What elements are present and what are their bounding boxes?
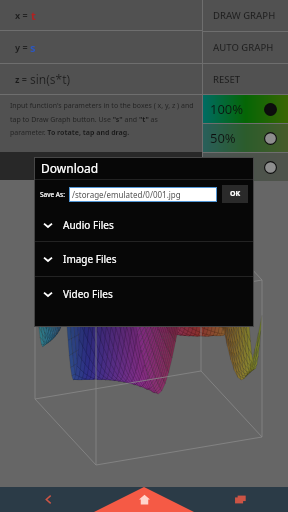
button[interactable]: Recents (192, 487, 288, 512)
staticText: sin(s*t) (30, 71, 71, 87)
staticText: RESET (213, 73, 241, 86)
button[interactable]: x = (0, 0, 202, 30)
button[interactable]: RESET (203, 64, 288, 94)
staticText: Audio Files (63, 218, 114, 232)
staticText: 50% (210, 129, 236, 147)
staticText: AUTO GRAPH (213, 41, 274, 54)
staticText: x = (15, 9, 31, 21)
button[interactable]: AUTO GRAPH (203, 32, 288, 63)
staticText: Save As: (40, 190, 65, 199)
button[interactable]: 100% (203, 95, 288, 123)
staticText: y = (15, 41, 30, 53)
staticText: Download (41, 160, 99, 176)
staticText: DRAW GRAPH (213, 9, 276, 22)
button[interactable]: DRAW GRAPH (203, 0, 288, 31)
button[interactable]: y = (0, 31, 202, 63)
button[interactable]: OK (222, 185, 248, 203)
button[interactable]: Audio Files (34, 208, 254, 241)
staticText: t (31, 8, 36, 23)
button[interactable]: 0% (203, 153, 288, 181)
button[interactable]: Video Files (34, 277, 254, 311)
staticText: z = (15, 73, 30, 85)
staticText: Video Files (63, 287, 113, 301)
button[interactable]: Home (96, 487, 192, 512)
staticText: s (30, 40, 36, 55)
staticText: 100% (210, 100, 244, 118)
button[interactable]: Back (0, 487, 96, 512)
staticText: Image Files (63, 252, 117, 266)
staticText: /storage/emulated/0/001.jpg (72, 189, 181, 200)
staticText: OK (230, 189, 241, 199)
button[interactable]: 50% (203, 124, 288, 152)
button[interactable]: Image Files (34, 242, 254, 276)
staticText: Input function's parameters in to the bo… (10, 101, 194, 137)
button[interactable]: z = (0, 64, 202, 94)
